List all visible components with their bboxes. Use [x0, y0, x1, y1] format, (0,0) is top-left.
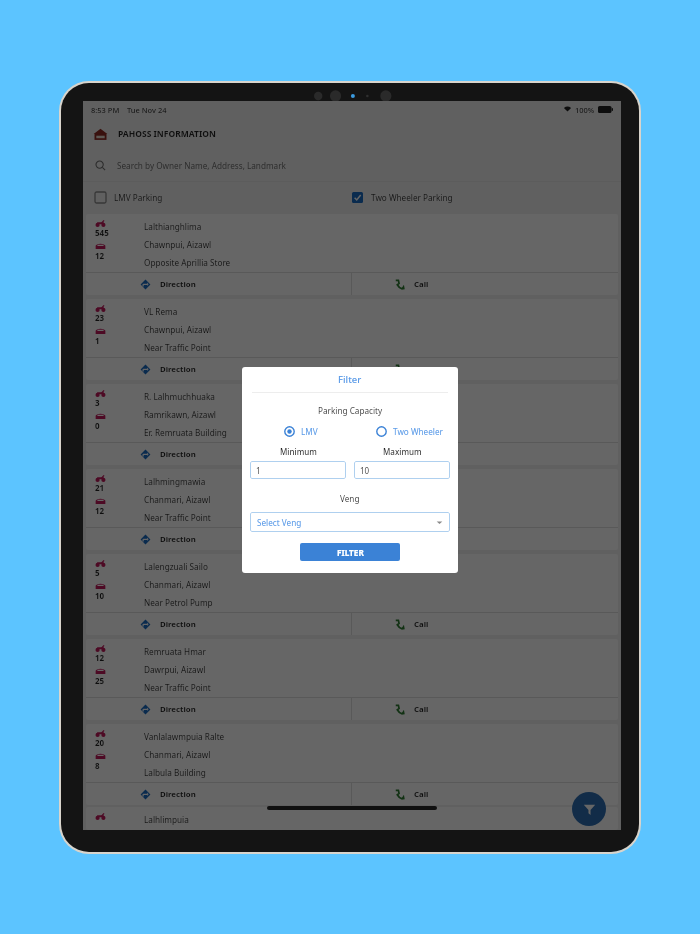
button[interactable]: LMV [242, 426, 350, 437]
staticText: Lalhlimpuia [144, 814, 189, 825]
staticText: Chawnpui, Aizawl [144, 324, 212, 335]
staticText: Near Petrol Pump [144, 597, 213, 608]
staticText: Direction [160, 704, 196, 715]
staticText: Call [414, 449, 429, 460]
staticText: Two Wheeler [393, 426, 443, 437]
staticText: Two Wheeler Parking [371, 192, 453, 203]
staticText: Lalthianghlima [144, 221, 202, 232]
button[interactable]: Filter [572, 792, 606, 826]
button[interactable]: Lalhlimpuia [86, 807, 618, 830]
staticText: Opposite Aprillia Store [144, 257, 231, 268]
staticText: 12 [95, 652, 105, 663]
staticText: VL Rema [144, 306, 178, 317]
button[interactable]: LMV Parking [83, 182, 352, 212]
button[interactable]: 12 [86, 639, 618, 720]
staticText: Chanmari, Aizawl [144, 749, 211, 760]
staticText: FILTER [337, 547, 364, 558]
staticText: Near Traffic Point [144, 512, 211, 523]
staticText: Call [414, 789, 429, 800]
staticText: 0 [95, 420, 100, 431]
button[interactable]: Direction [86, 613, 351, 635]
staticText: Tue Nov 24 [127, 105, 167, 115]
staticText: R. Lalhmuchhuaka [144, 391, 215, 402]
staticText: LMV [301, 426, 318, 437]
staticText: 12 [95, 250, 105, 261]
staticText: Chanmari, Aizawl [144, 494, 211, 505]
staticText: Direction [160, 789, 196, 800]
staticText: Er. Remruata Building [144, 427, 227, 438]
staticText: LMV Parking [114, 192, 163, 203]
staticText: 8:53 PM [91, 105, 120, 115]
button[interactable]: Direction [86, 698, 351, 720]
staticText: 1 [256, 465, 261, 476]
staticText: Lalengzuali Sailo [144, 561, 208, 572]
staticText: 8 [95, 760, 100, 771]
staticText: Call [414, 364, 429, 375]
staticText: Parking Capacity [318, 405, 383, 416]
staticText: Dawrpui, Aizawl [144, 664, 206, 675]
staticText: 10 [360, 465, 370, 476]
button[interactable]: 545 [86, 214, 618, 295]
staticText: 100% [575, 105, 595, 115]
staticText: 10 [95, 590, 105, 601]
button[interactable]: Call [352, 613, 618, 635]
button[interactable]: FILTER [300, 543, 400, 561]
staticText: Near Traffic Point [144, 682, 211, 693]
staticText: Chanmari, Aizawl [144, 579, 211, 590]
staticText: Veng [340, 493, 360, 504]
staticText: Select Veng [257, 517, 302, 528]
button[interactable]: Call [352, 273, 618, 295]
staticText: Filter [338, 373, 362, 386]
staticText: Lalbula Building [144, 767, 206, 778]
button[interactable]: 21 [86, 469, 618, 550]
button[interactable]: Call [352, 358, 618, 380]
staticText: Call [414, 279, 429, 290]
button[interactable]: 10 [354, 461, 450, 479]
staticText: 5 [95, 567, 100, 578]
button[interactable]: 5 [86, 554, 618, 635]
staticText: Lalhmingmawia [144, 476, 206, 487]
staticText: 1 [95, 335, 100, 346]
staticText: Minimum [280, 446, 317, 457]
staticText: Vanlalawmpuia Ralte [144, 731, 225, 742]
staticText: Direction [160, 279, 196, 290]
staticText: 25 [95, 675, 105, 686]
staticText: Near Traffic Point [144, 342, 211, 353]
button[interactable]: 3 [86, 384, 618, 465]
staticText: 21 [95, 482, 105, 493]
button[interactable]: 1 [250, 461, 346, 479]
button[interactable]: 20 [86, 724, 618, 805]
staticText: Search by Owner Name, Address, Landmark [117, 160, 286, 171]
button[interactable]: Call [352, 783, 618, 805]
staticText: Direction [160, 449, 196, 460]
button[interactable]: Call [352, 698, 618, 720]
staticText: PAHOSS INFORMATION [118, 128, 216, 140]
staticText: Remruata Hmar [144, 646, 206, 657]
staticText: Direction [160, 364, 196, 375]
staticText: 20 [95, 737, 105, 748]
staticText: 23 [95, 312, 105, 323]
button[interactable]: Direction [86, 443, 351, 465]
staticText: 545 [95, 227, 109, 238]
staticText: Chawnpui, Aizawl [144, 239, 212, 250]
button[interactable]: Direction [86, 273, 351, 295]
button[interactable]: 23 [86, 299, 618, 380]
button[interactable]: Direction [86, 358, 351, 380]
button[interactable]: Two Wheeler Parking [352, 182, 621, 212]
button[interactable]: Direction [86, 783, 351, 805]
staticText: Direction [160, 619, 196, 630]
staticText: Call [414, 619, 429, 630]
button[interactable]: Direction [86, 528, 351, 550]
staticText: 12 [95, 505, 105, 516]
staticText: Direction [160, 534, 196, 545]
button[interactable]: Call [352, 528, 618, 550]
staticText: 3 [95, 397, 100, 408]
staticText: Ramrikawn, Aizawl [144, 409, 216, 420]
button[interactable]: Two Wheeler [350, 426, 458, 437]
button[interactable]: Select Veng [250, 512, 450, 532]
staticText: Maximum [383, 446, 422, 457]
button[interactable]: Call [352, 443, 618, 465]
staticText: Call [414, 704, 429, 715]
